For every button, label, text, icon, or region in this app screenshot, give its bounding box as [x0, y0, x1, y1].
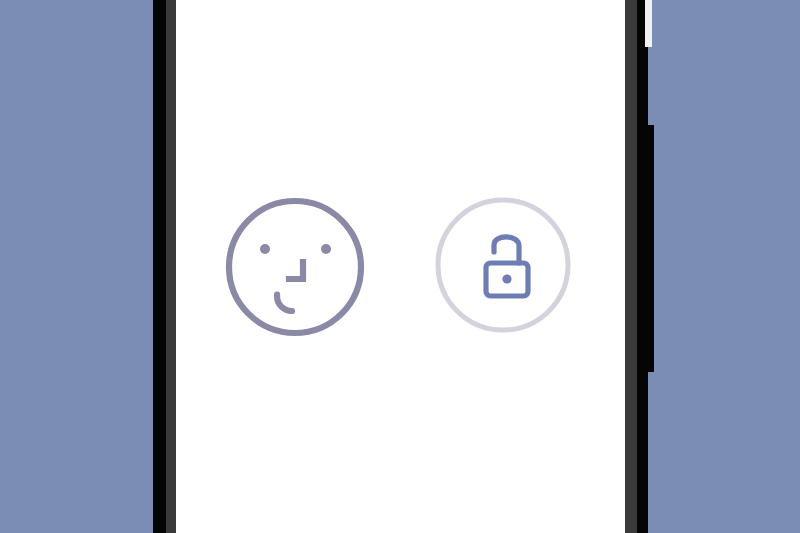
button[interactable]: Unlock: [438, 200, 568, 330]
button[interactable]: Face unlock: [229, 201, 361, 333]
